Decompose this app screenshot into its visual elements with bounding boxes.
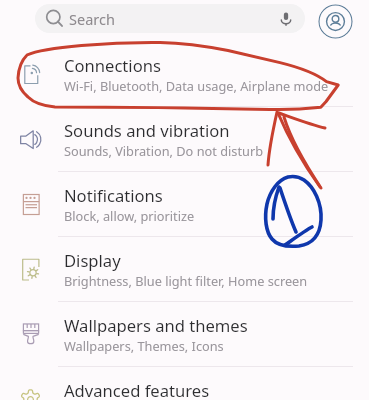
staticText: Search bbox=[69, 9, 115, 29]
button[interactable]: Display bbox=[0, 237, 369, 301]
staticText: Sounds, Vibration, Do not disturb bbox=[64, 142, 263, 159]
staticText: Notifications bbox=[64, 184, 163, 207]
staticText: Wi-Fi, Bluetooth, Data usage, Airplane m… bbox=[64, 77, 329, 94]
button[interactable]: Notifications bbox=[0, 172, 369, 236]
button[interactable]: Sounds and vibration bbox=[0, 107, 369, 171]
button[interactable]: Account bbox=[318, 4, 353, 39]
staticText: Block, allow, prioritize bbox=[64, 207, 195, 224]
staticText: Advanced features bbox=[64, 379, 210, 400]
staticText: Wallpapers, Themes, Icons bbox=[64, 337, 224, 354]
button[interactable]: Connections bbox=[0, 42, 369, 106]
button[interactable]: Search bbox=[35, 4, 305, 33]
staticText: Sounds and vibration bbox=[64, 119, 230, 142]
staticText: Connections bbox=[64, 54, 161, 77]
button[interactable]: Wallpapers and themes bbox=[0, 302, 369, 366]
staticText: Display bbox=[64, 249, 121, 272]
button[interactable]: Advanced features bbox=[0, 367, 369, 400]
staticText: Wallpapers and themes bbox=[64, 314, 248, 337]
staticText: Brightness, Blue light filter, Home scre… bbox=[64, 272, 308, 289]
